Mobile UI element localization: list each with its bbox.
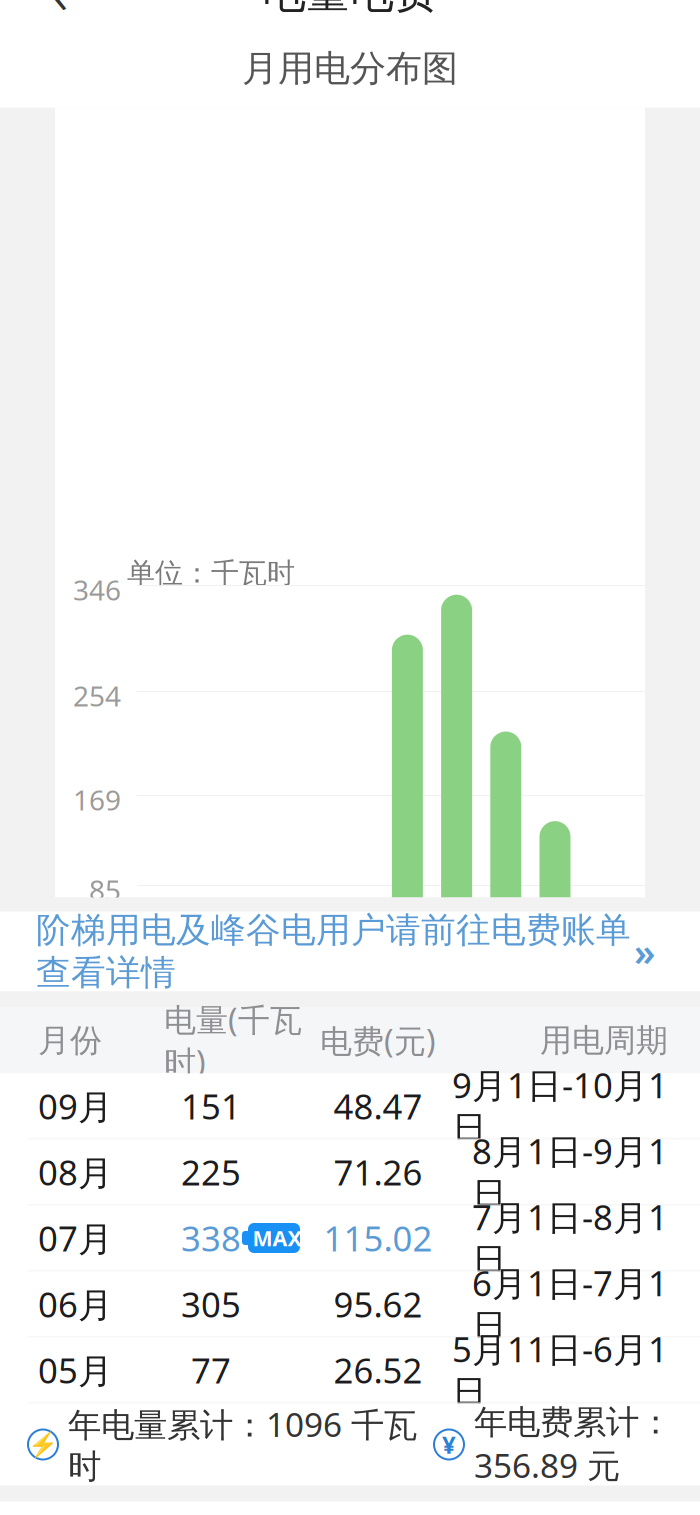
staticText: 电费(元) xyxy=(320,1019,436,1062)
staticText: 5月11日-6月1日 xyxy=(452,1326,668,1414)
staticText: 71.26 xyxy=(333,1149,422,1195)
staticText: 年电费累计：356.89 元 xyxy=(474,1402,672,1487)
staticText: 3月 xyxy=(239,1025,281,1061)
staticText: 电量(千瓦时) xyxy=(164,998,302,1083)
staticText: 1月 xyxy=(140,1025,182,1061)
staticText: 305 xyxy=(181,1281,241,1327)
staticText: 5月 xyxy=(337,1025,379,1061)
staticText: 8月1日-9月1日 xyxy=(472,1128,668,1216)
staticText: 月用电分布图 xyxy=(242,46,458,91)
staticText: 77 xyxy=(191,1347,231,1393)
staticText: 06月 xyxy=(38,1281,113,1327)
staticText: 85 xyxy=(89,871,121,908)
staticText: 115.02 xyxy=(323,1215,432,1261)
staticText: 95.62 xyxy=(333,1281,422,1327)
staticText: 7月1日-8月1日 xyxy=(472,1194,668,1282)
staticText: 07月 xyxy=(38,1215,113,1261)
staticText: 338 xyxy=(181,1215,241,1261)
button[interactable]: 返回 xyxy=(22,0,96,29)
staticText: ⚡ xyxy=(28,1431,58,1458)
staticText: ‹ xyxy=(49,0,68,35)
staticText: 11月 xyxy=(638,1009,668,1077)
staticText: 6月 xyxy=(386,1025,428,1061)
staticText: 电量电费 xyxy=(262,0,438,19)
staticText: 单位：千瓦时 xyxy=(127,556,295,590)
staticText: 08月 xyxy=(38,1149,113,1195)
staticText: 10月 xyxy=(589,1009,619,1077)
staticText: 05月 xyxy=(38,1347,113,1393)
staticText: 2月 xyxy=(190,1025,232,1061)
staticText: 254 xyxy=(73,677,121,714)
staticText: 225 xyxy=(181,1149,241,1195)
staticText: 阶梯用电及峰谷电用户请前往电费账单查看详情 xyxy=(36,909,631,994)
staticText: ¥ xyxy=(442,1429,456,1460)
staticText: 346 xyxy=(73,571,121,608)
staticText: 年电量累计：1096 千瓦时 xyxy=(68,1402,417,1487)
staticText: 169 xyxy=(73,781,121,818)
staticText: 09月 xyxy=(38,1083,113,1129)
button[interactable]: 阶梯用电及峰谷电用户请前往电费账单查看详情 xyxy=(0,911,700,991)
staticText: 9月 xyxy=(534,1025,576,1061)
staticText: » xyxy=(634,927,655,976)
staticText: 6月1日-7月1日 xyxy=(472,1260,668,1348)
staticText: 4月 xyxy=(288,1025,330,1061)
staticText: 月份 xyxy=(38,1021,102,1060)
staticText: MAX xyxy=(252,1224,301,1252)
staticText: 26.52 xyxy=(333,1347,422,1393)
staticText: 用电周期 xyxy=(540,1021,668,1060)
staticText: 48.47 xyxy=(333,1083,422,1129)
staticText: 151 xyxy=(181,1083,241,1129)
staticText: 9月1日-10月1日 xyxy=(452,1062,668,1150)
